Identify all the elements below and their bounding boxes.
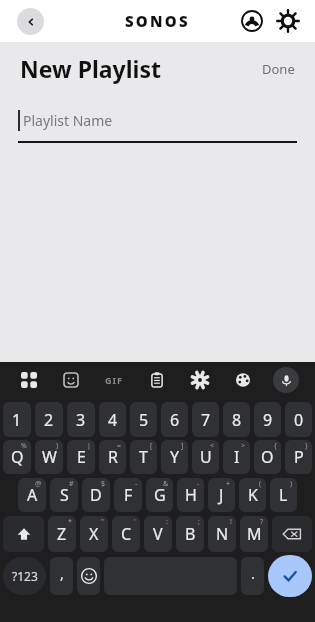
staticText: I: [234, 446, 240, 468]
staticText: H: [185, 484, 197, 506]
staticText: ?: [260, 517, 264, 527]
button[interactable]: S: [50, 478, 78, 512]
button[interactable]: X: [80, 516, 108, 552]
button[interactable]: I: [223, 440, 250, 474]
staticText: X: [89, 523, 99, 545]
button[interactable]: ?123: [3, 557, 46, 595]
button[interactable]: A: [18, 478, 46, 512]
staticText: 7: [201, 409, 211, 431]
button[interactable]: Backspace: [272, 516, 312, 552]
staticText: ]: [181, 441, 184, 451]
button[interactable]: Apps: [8, 362, 50, 398]
button[interactable]: 9: [254, 402, 281, 437]
button[interactable]: N: [208, 516, 236, 552]
staticText: =: [117, 441, 122, 451]
button[interactable]: Z: [48, 516, 76, 552]
button[interactable]: Emoji: [77, 557, 100, 595]
button[interactable]: Done: [260, 58, 297, 80]
button[interactable]: ,: [50, 557, 73, 595]
staticText: ): [290, 479, 293, 489]
button[interactable]: Playlist Name: [18, 105, 297, 135]
staticText: 9: [263, 409, 273, 431]
button[interactable]: Settings: [178, 362, 221, 398]
staticText: ': [134, 517, 136, 527]
button[interactable]: Y: [161, 440, 188, 474]
button[interactable]: Shift: [3, 516, 44, 552]
staticText: F: [124, 484, 133, 506]
button[interactable]: U: [192, 440, 219, 474]
button[interactable]: V: [144, 516, 172, 552]
staticText: >: [241, 441, 246, 451]
staticText: 4: [108, 409, 118, 431]
button[interactable]: L: [270, 478, 297, 512]
button[interactable]: Account: [235, 4, 269, 38]
button[interactable]: E: [67, 440, 95, 474]
staticText: ;: [198, 517, 200, 527]
button[interactable]: 4: [99, 402, 126, 437]
button[interactable]: 3: [67, 402, 95, 437]
button[interactable]: T: [130, 440, 157, 474]
button[interactable]: 1: [3, 402, 31, 437]
button[interactable]: Clipboard: [135, 362, 178, 398]
button[interactable]: .: [241, 557, 264, 595]
staticText: |: [87, 441, 91, 451]
staticText: }: [305, 441, 308, 451]
staticText: O: [261, 446, 274, 468]
staticText: 1: [12, 409, 22, 431]
button[interactable]: K: [239, 478, 266, 512]
button[interactable]: GIF: [92, 362, 135, 398]
staticText: 6: [170, 409, 180, 431]
button[interactable]: 0: [285, 402, 312, 437]
staticText: R: [108, 446, 118, 468]
button[interactable]: 7: [192, 402, 219, 437]
button[interactable]: Q: [3, 440, 31, 474]
button[interactable]: Voice input: [264, 362, 307, 398]
button[interactable]: G: [146, 478, 173, 512]
button[interactable]: Enter: [268, 555, 312, 597]
button[interactable]: 6: [161, 402, 188, 437]
button[interactable]: H: [177, 478, 204, 512]
staticText: New Playlist: [20, 53, 161, 84]
staticText: J: [219, 484, 224, 506]
button[interactable]: J: [208, 478, 235, 512]
button[interactable]: B: [176, 516, 204, 552]
button[interactable]: 2: [35, 402, 63, 437]
button[interactable]: D: [82, 478, 110, 512]
staticText: <: [210, 441, 215, 451]
button[interactable]: Themes: [221, 362, 264, 398]
button[interactable]: F: [114, 478, 142, 512]
staticText: -: [135, 479, 138, 489]
staticText: *: [68, 517, 72, 527]
button[interactable]: O: [254, 440, 281, 474]
staticText: L: [279, 484, 288, 506]
staticText: !: [230, 517, 232, 527]
staticText: 0: [294, 409, 304, 431]
staticText: (: [259, 479, 262, 489]
button[interactable]: W: [35, 440, 63, 474]
button[interactable]: P: [285, 440, 312, 474]
button[interactable]: 5: [130, 402, 157, 437]
staticText: :: [166, 517, 168, 527]
staticText: GIF: [105, 374, 123, 386]
staticText: @: [35, 479, 42, 489]
staticText: Y: [170, 446, 180, 468]
staticText: -: [197, 479, 200, 489]
staticText: $: [101, 479, 106, 489]
staticText: [: [150, 441, 153, 451]
button[interactable]: R: [99, 440, 126, 474]
button[interactable]: 8: [223, 402, 250, 437]
staticText: M: [247, 523, 262, 545]
staticText: 5: [139, 409, 149, 431]
staticText: ): [56, 441, 59, 451]
button[interactable]: M: [240, 516, 268, 552]
button[interactable]: Stickers: [50, 362, 92, 398]
staticText: 8: [232, 409, 242, 431]
staticText: .: [251, 564, 255, 583]
staticText: S: [60, 484, 69, 506]
button[interactable]: Settings: [271, 4, 305, 38]
button[interactable]: C: [112, 516, 140, 552]
button[interactable]: Back: [17, 8, 44, 35]
staticText: G: [154, 484, 166, 506]
staticText: B: [185, 523, 196, 545]
